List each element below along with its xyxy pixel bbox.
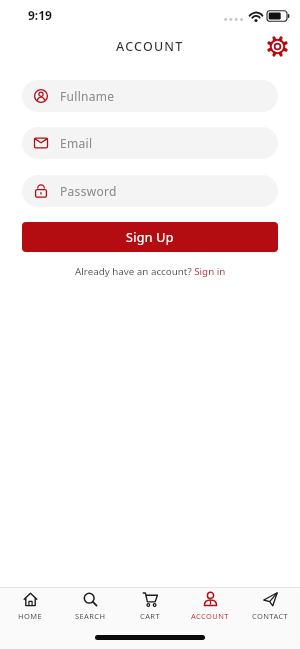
- staticText: Password: [60, 183, 117, 199]
- button[interactable]: Email: [22, 127, 278, 159]
- button[interactable]: [267, 36, 288, 57]
- staticText: CART: [140, 611, 160, 621]
- staticText: 9:19: [28, 7, 52, 23]
- button[interactable]: Fullname: [22, 80, 278, 112]
- button[interactable]: Sign Up: [22, 222, 278, 252]
- button[interactable]: CONTACT: [240, 591, 300, 621]
- button[interactable]: SEARCH: [60, 591, 120, 621]
- button[interactable]: Already have an account? Sign in: [22, 265, 278, 278]
- staticText: Fullname: [60, 88, 115, 104]
- button[interactable]: CART: [120, 591, 180, 621]
- staticText: Email: [60, 135, 93, 151]
- staticText: Sign Up: [126, 229, 174, 246]
- button[interactable]: Password: [22, 175, 278, 207]
- staticText: Already have an account? Sign in: [75, 265, 226, 278]
- button[interactable]: HOME: [0, 591, 60, 621]
- staticText: CONTACT: [252, 611, 289, 621]
- staticText: SEARCH: [75, 611, 106, 621]
- staticText: ACCOUNT: [191, 611, 229, 621]
- staticText: ACCOUNT: [116, 38, 184, 55]
- button[interactable]: ACCOUNT: [180, 591, 240, 621]
- staticText: HOME: [18, 611, 42, 621]
